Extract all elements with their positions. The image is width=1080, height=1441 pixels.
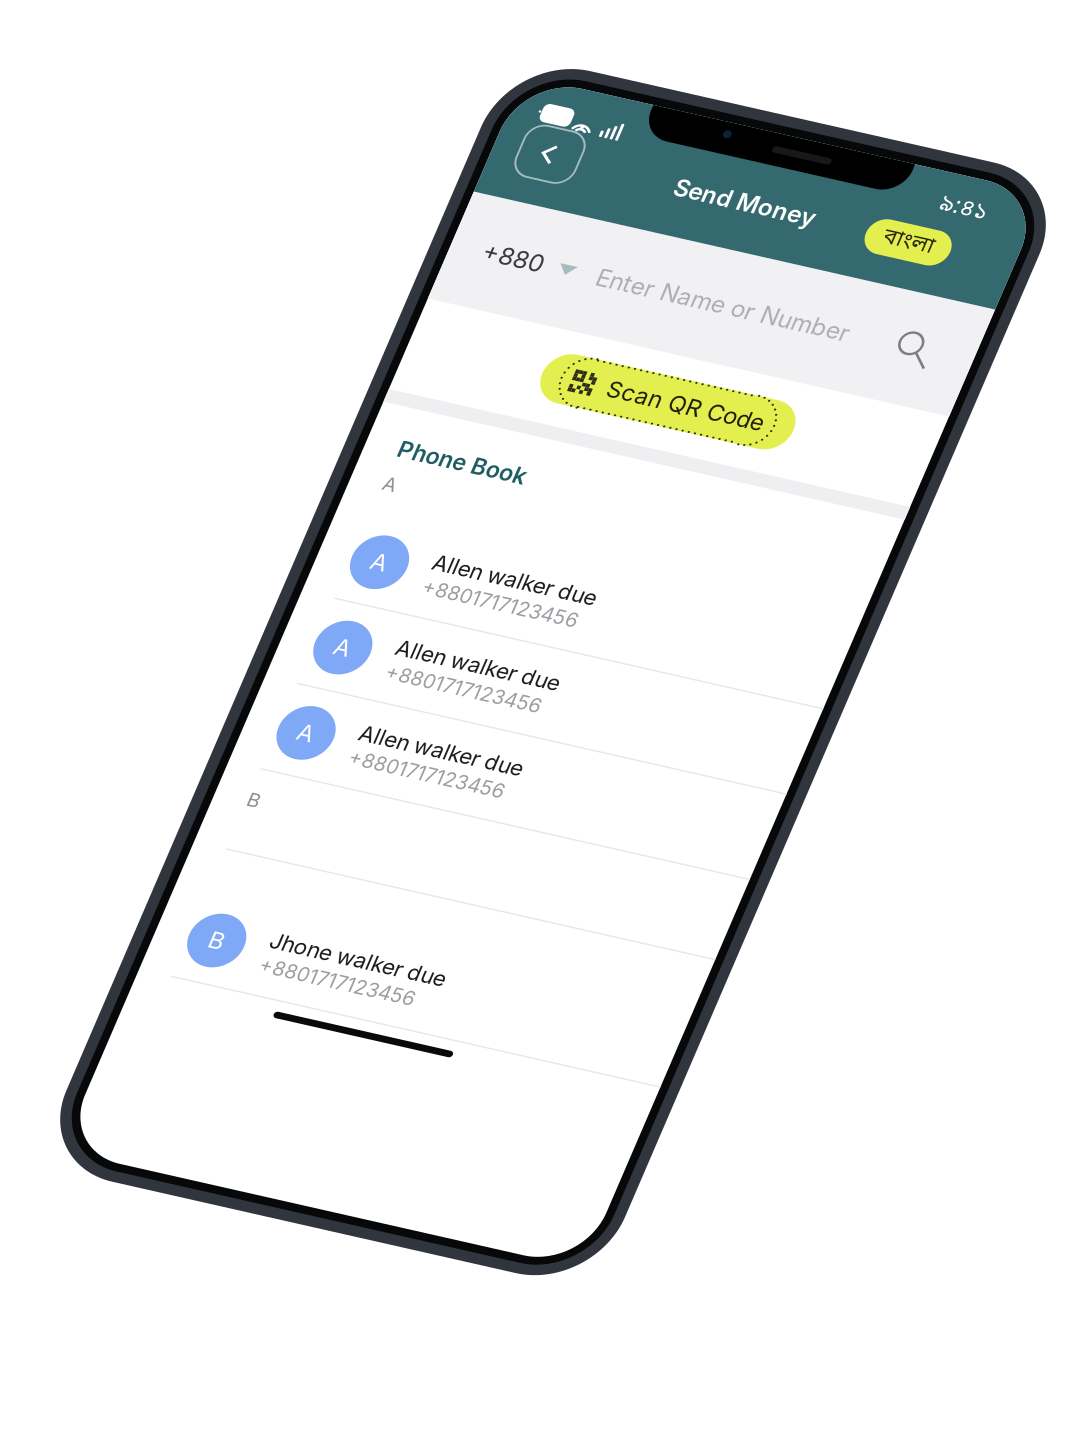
button[interactable]: A	[0, 338, 390, 405]
button[interactable]: B	[0, 635, 390, 702]
button[interactable]: A	[0, 405, 390, 472]
button[interactable]: A	[0, 472, 390, 539]
